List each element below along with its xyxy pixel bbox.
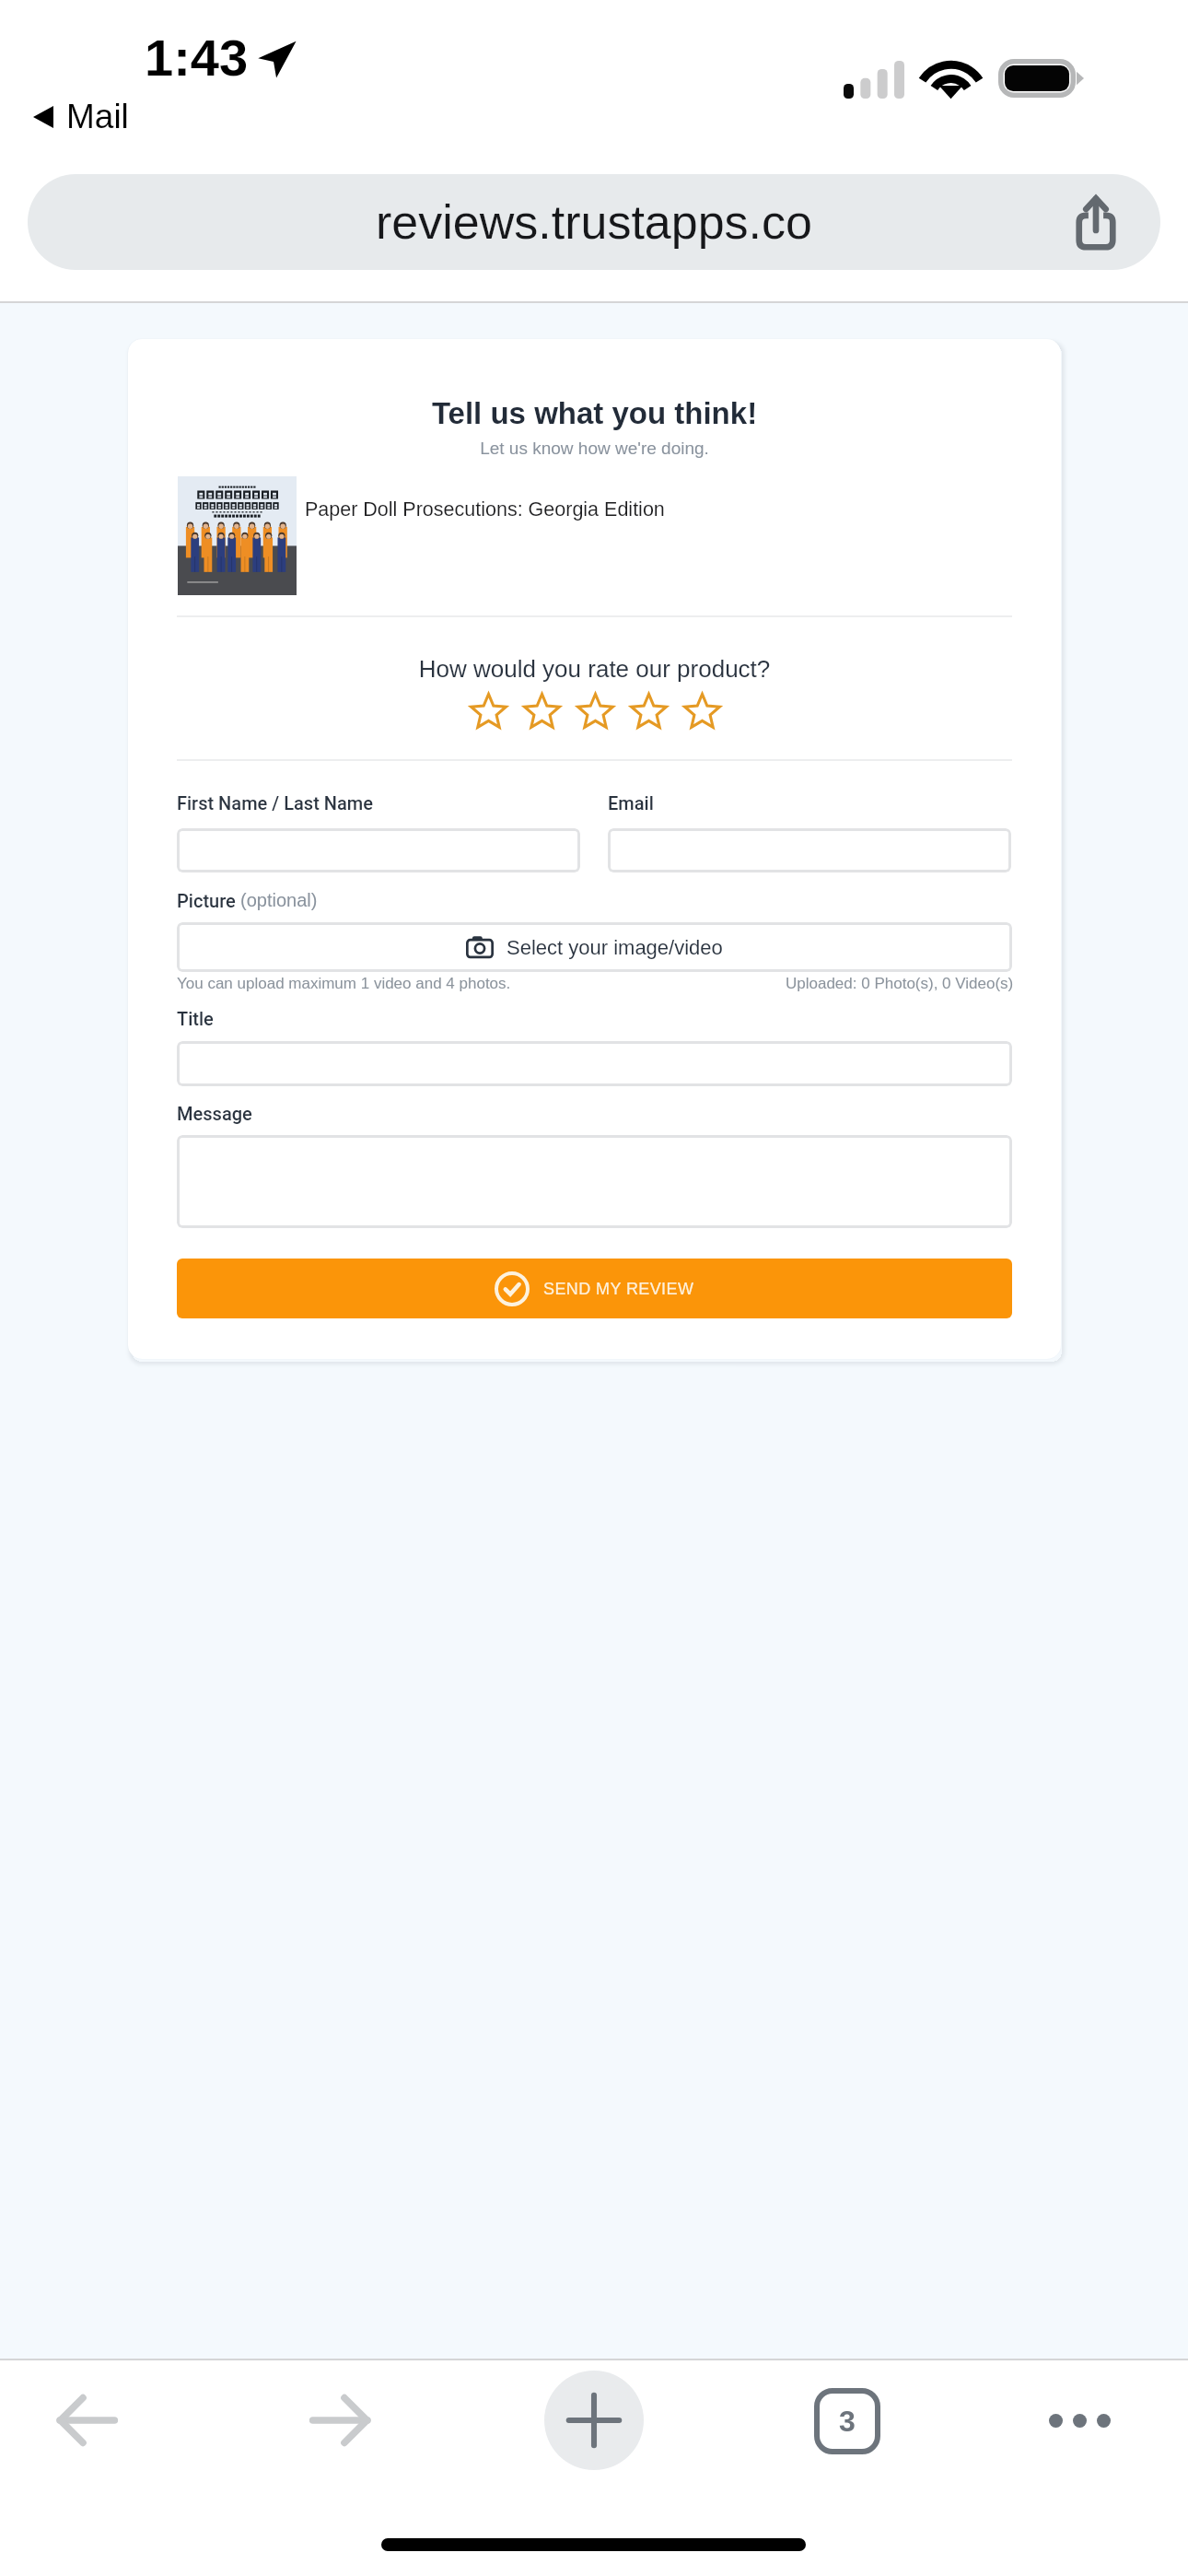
staticText: SEND MY REVIEW bbox=[543, 1280, 694, 1298]
button[interactable]: New tab bbox=[544, 2371, 644, 2470]
staticText: 3 bbox=[839, 2405, 856, 2438]
button[interactable]: Rate 2 star bbox=[515, 689, 568, 733]
button[interactable]: Mail bbox=[33, 98, 129, 135]
button[interactable]: More bbox=[1033, 2374, 1125, 2466]
staticText: Title bbox=[177, 1008, 214, 1029]
button[interactable]: SEND MY REVIEW bbox=[177, 1259, 1012, 1318]
button[interactable]: Rate 5 star bbox=[675, 689, 728, 733]
staticText: Tell us what you think! bbox=[128, 396, 1061, 430]
button[interactable]: Select your image/video bbox=[177, 922, 1012, 972]
staticText: (optional) bbox=[240, 890, 318, 910]
button[interactable] bbox=[608, 828, 1011, 872]
button[interactable]: Forward bbox=[295, 2374, 387, 2466]
staticText: Paper Doll Prosecutions: Georgia Edition bbox=[305, 498, 665, 521]
staticText: You can upload maximum 1 video and 4 pho… bbox=[177, 975, 511, 992]
staticText: Message bbox=[177, 1103, 252, 1124]
button[interactable]: Rate 4 star bbox=[622, 689, 675, 733]
staticText: 1:43 bbox=[145, 29, 249, 87]
button[interactable]: Back bbox=[41, 2374, 133, 2466]
staticText: reviews.trustapps.co bbox=[376, 195, 812, 249]
button[interactable]: Rate 1 star bbox=[461, 689, 515, 733]
button[interactable] bbox=[177, 828, 580, 872]
staticText: First Name / Last Name bbox=[177, 792, 373, 814]
staticText: Email bbox=[608, 792, 654, 814]
staticText: Uploaded: 0 Photo(s), 0 Video(s) bbox=[786, 975, 1014, 992]
button[interactable]: Share bbox=[1059, 185, 1133, 259]
staticText: Select your image/video bbox=[507, 936, 723, 959]
staticText: Let us know how we're doing. bbox=[128, 439, 1061, 458]
staticText: How would you rate our product? bbox=[128, 655, 1061, 682]
staticText: Mail bbox=[66, 98, 129, 135]
staticText: Picture bbox=[177, 890, 240, 911]
button[interactable]: Rate 3 star bbox=[568, 689, 622, 733]
button[interactable]: reviews.trustapps.co bbox=[28, 174, 1160, 270]
button[interactable] bbox=[177, 1135, 1012, 1228]
button[interactable]: Tabs bbox=[814, 2388, 880, 2454]
button[interactable] bbox=[177, 1041, 1012, 1086]
